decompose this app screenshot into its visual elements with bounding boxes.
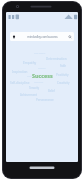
staticText: Achievement [20,93,38,97]
staticText: Belief [48,89,55,93]
other: Site icon [12,35,16,39]
staticText: Faith [60,64,67,68]
staticText: Perseverance [36,98,54,102]
button[interactable]: Site icon [10,32,74,41]
staticText: Self-discipline [10,81,30,85]
staticText: goal setting [34,52,46,55]
staticText: Inspiration [12,70,28,74]
staticText: Plan [27,75,32,78]
staticText: Success [32,72,53,79]
staticText: Creativity [57,81,70,85]
staticText: Empathy [23,61,37,65]
staticText: Mindset [34,80,44,83]
staticText: Determination [46,57,67,61]
staticText: mindvalley.com/success [27,35,58,39]
staticText: Positivity [56,73,69,77]
staticText: Tenacity [29,86,39,90]
other: Search [68,35,72,39]
staticText: mindset [38,67,46,70]
